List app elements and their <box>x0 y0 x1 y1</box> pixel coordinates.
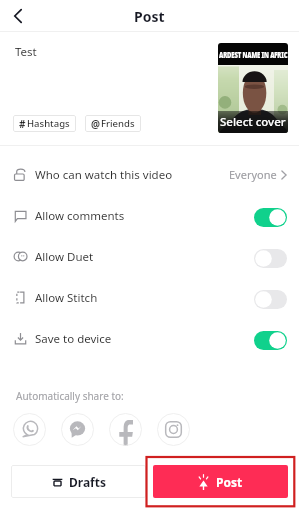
button[interactable]: Messenger <box>61 413 94 446</box>
button[interactable]: Drafts <box>11 465 146 498</box>
button[interactable]: Save to device <box>254 331 287 350</box>
button[interactable]: Instagram <box>157 413 190 446</box>
staticText: ARDEST NAME IN AFRIC <box>219 48 288 61</box>
staticText: Allow Stitch <box>35 290 98 306</box>
staticText: Save to device <box>35 331 112 347</box>
button[interactable]: Facebook <box>109 413 142 446</box>
staticText: Post <box>134 7 165 26</box>
button[interactable]: Allow comments <box>0 195 299 236</box>
staticText: Allow Duet <box>35 249 94 265</box>
staticText: @ <box>91 117 100 131</box>
button[interactable]: WhatsApp <box>13 413 46 446</box>
button[interactable]: Allow Stitch <box>254 290 287 309</box>
staticText: Drafts <box>69 474 106 490</box>
button[interactable]: Allow comments <box>254 208 287 227</box>
button[interactable]: Who can watch this video <box>0 154 299 195</box>
button[interactable]: # <box>13 115 76 132</box>
staticText: Test <box>15 44 37 60</box>
staticText: Select cover <box>220 114 286 130</box>
button[interactable]: Save to device <box>0 318 299 359</box>
button[interactable]: Select cover <box>218 43 288 133</box>
button[interactable]: Post <box>153 465 288 498</box>
staticText: Automatically share to: <box>16 389 124 403</box>
button[interactable]: Back <box>0 0 36 32</box>
button[interactable]: Allow Duet <box>254 249 287 268</box>
button[interactable]: @ <box>85 115 141 132</box>
button[interactable]: Allow Duet <box>0 236 299 277</box>
staticText: Allow comments <box>35 208 125 224</box>
staticText: Everyone <box>229 167 277 182</box>
staticText: Who can watch this video <box>35 167 173 183</box>
staticText: Post <box>216 474 243 490</box>
staticText: Friends <box>101 117 135 130</box>
staticText: Hashtags <box>27 117 70 130</box>
staticText: # <box>19 117 26 131</box>
button[interactable]: Allow Stitch <box>0 277 299 318</box>
